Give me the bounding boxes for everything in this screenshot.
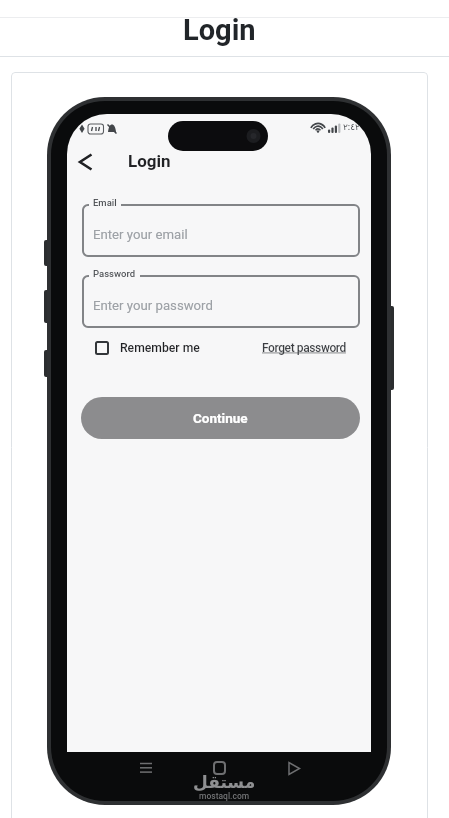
staticText: Remember me <box>120 341 200 355</box>
staticText: mostaql.com <box>199 791 250 801</box>
button[interactable] <box>282 757 306 779</box>
button[interactable]: Forget password <box>217 341 346 355</box>
button[interactable] <box>82 204 360 257</box>
staticText: Login <box>183 13 256 47</box>
staticText: مستقل <box>193 772 256 792</box>
button[interactable]: Continue <box>81 397 360 439</box>
button[interactable]: Remember me <box>93 336 205 360</box>
staticText: Enter your email <box>93 227 188 242</box>
staticText: ٢:٤٢ <box>343 122 360 133</box>
staticText: Password <box>93 268 136 279</box>
button[interactable] <box>73 148 99 176</box>
button[interactable] <box>82 275 360 328</box>
button[interactable] <box>134 757 158 779</box>
staticText: Enter your password <box>93 298 213 313</box>
button[interactable] <box>208 757 232 779</box>
staticText: Login <box>128 151 171 171</box>
staticText: Email <box>93 197 117 208</box>
staticText: Continue <box>193 410 248 426</box>
staticText: Forget password <box>262 341 346 355</box>
